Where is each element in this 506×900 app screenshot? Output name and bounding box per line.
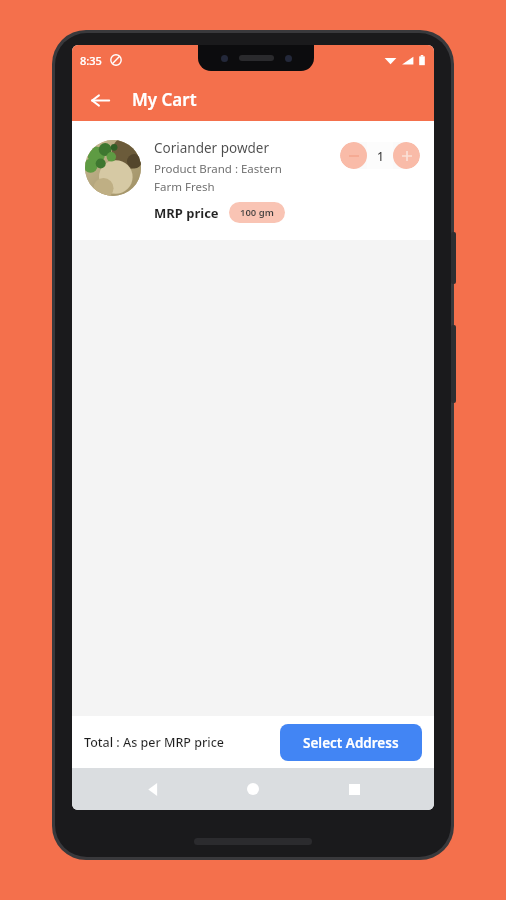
button[interactable]: Home bbox=[233, 769, 273, 809]
staticText: Select Address bbox=[303, 734, 399, 752]
button[interactable]: Decrease quantity bbox=[340, 142, 367, 169]
button[interactable]: Increase quantity bbox=[393, 142, 420, 169]
button[interactable]: Select Address bbox=[280, 724, 422, 761]
staticText: MRP price bbox=[154, 204, 219, 222]
staticText: Product Brand : Eastern bbox=[154, 161, 282, 177]
staticText: Total : As per MRP price bbox=[84, 734, 224, 751]
staticText: My Cart bbox=[132, 88, 197, 111]
button[interactable]: Recent apps bbox=[334, 769, 374, 809]
button[interactable]: Coriander powder bbox=[72, 121, 434, 240]
staticText: 8:35 bbox=[80, 53, 102, 68]
button[interactable]: Back bbox=[82, 82, 118, 118]
staticText: Coriander powder bbox=[154, 139, 269, 157]
staticText: 100 gm bbox=[240, 206, 274, 219]
staticText: 1 bbox=[377, 148, 384, 164]
button[interactable]: Back bbox=[133, 769, 173, 809]
staticText: Farm Fresh bbox=[154, 179, 215, 195]
